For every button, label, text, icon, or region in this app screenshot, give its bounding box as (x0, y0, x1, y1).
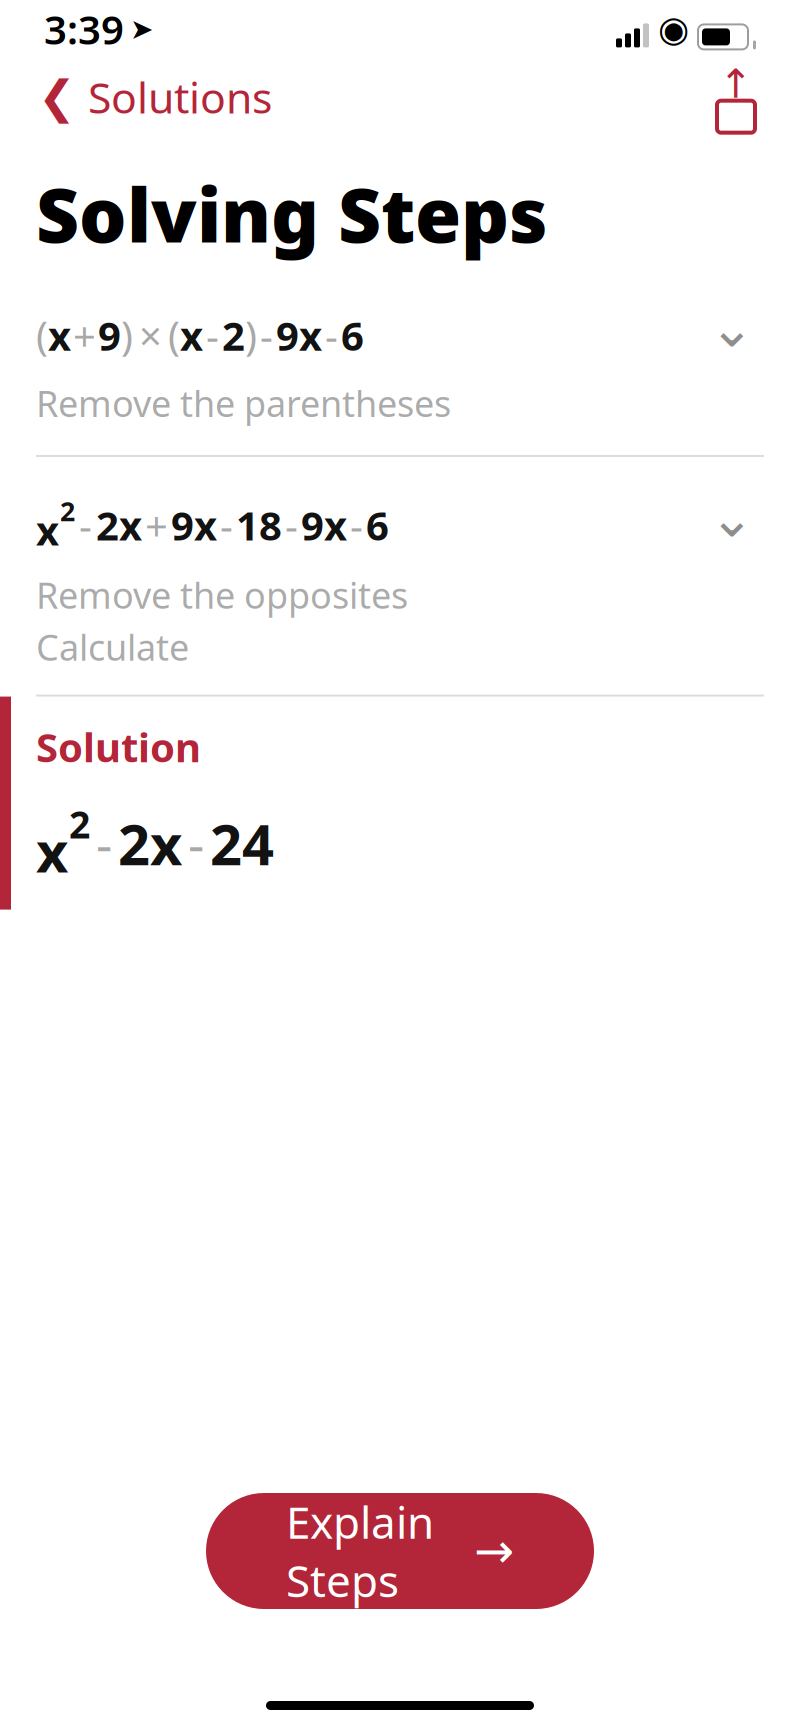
staticText: 2 (96, 498, 119, 551)
staticText: 9 (276, 309, 299, 362)
staticText: - (96, 810, 112, 877)
staticText: Solution (36, 720, 201, 773)
button[interactable]: Explain Steps (206, 1493, 594, 1609)
staticText: - (260, 309, 273, 362)
staticText: - (188, 810, 204, 877)
staticText: ⌄ (709, 488, 754, 548)
staticText: Explain Steps (286, 1493, 434, 1609)
staticText: - (350, 498, 363, 551)
staticText: - (220, 498, 233, 551)
button[interactable]: Share (692, 66, 780, 128)
staticText: 9 (301, 498, 324, 551)
button[interactable]: ❮ (20, 59, 290, 135)
staticText: 18 (236, 498, 282, 551)
staticText: x (119, 498, 142, 551)
staticText: x (48, 309, 71, 362)
staticText: × (139, 309, 162, 362)
staticText: x (324, 498, 347, 551)
staticText: x (36, 814, 68, 888)
staticText: Remove the opposites (36, 571, 408, 619)
staticText: + (73, 309, 96, 362)
staticText: x (36, 503, 59, 557)
button[interactable]: Expand step (700, 301, 764, 369)
staticText: ◉ (658, 9, 689, 49)
staticText: ❮ (38, 71, 76, 123)
staticText: 2 (118, 806, 150, 881)
staticText: ⌄ (709, 298, 754, 358)
staticText: ) (121, 309, 133, 362)
staticText: → (474, 1524, 514, 1578)
staticText: x (194, 498, 217, 551)
staticText: Remove the parentheses (36, 379, 451, 427)
staticText: 2 (222, 309, 245, 362)
staticText: ↑ (719, 61, 753, 107)
staticText: 3:39 (44, 2, 124, 55)
staticText: Solving Steps (36, 164, 548, 263)
staticText: x (180, 309, 203, 362)
staticText: - (79, 498, 92, 551)
staticText: Calculate (36, 623, 189, 671)
staticText: + (145, 498, 168, 551)
staticText: x (150, 806, 182, 881)
staticText: 9 (171, 498, 194, 551)
staticText: Solutions (88, 69, 272, 125)
staticText: x (299, 309, 322, 362)
button[interactable]: Expand step (700, 491, 764, 559)
staticText: ) (245, 309, 257, 362)
staticText: - (285, 498, 298, 551)
staticText: ( (168, 309, 180, 362)
staticText: 6 (366, 498, 389, 551)
staticText: ➤ (130, 13, 153, 45)
staticText: 2 (69, 799, 90, 849)
staticText: - (206, 309, 219, 362)
staticText: 2 (60, 493, 75, 529)
staticText: ( (36, 309, 48, 362)
staticText: 6 (341, 309, 364, 362)
staticText: - (325, 309, 338, 362)
staticText: 9 (98, 309, 121, 362)
staticText: 24 (210, 806, 274, 881)
